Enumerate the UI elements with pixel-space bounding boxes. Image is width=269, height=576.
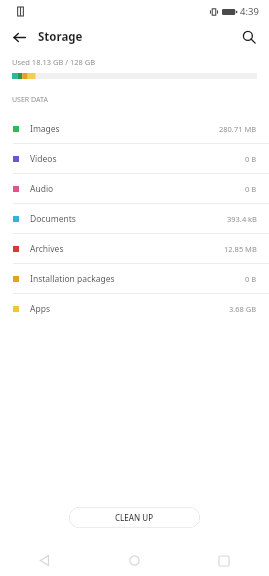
button[interactable]: Installation packages — [0, 264, 269, 294]
staticText: Documents — [30, 213, 76, 225]
button[interactable]: Images — [0, 114, 269, 144]
button[interactable]: Back — [0, 545, 89, 576]
staticText: CLEAN UP — [115, 512, 154, 523]
button[interactable]: Audio — [0, 174, 269, 204]
button[interactable]: Home — [89, 545, 179, 576]
staticText: Videos — [30, 153, 57, 165]
staticText: 0 B — [245, 184, 257, 194]
staticText: 0 B — [245, 274, 257, 284]
staticText: Storage — [38, 29, 83, 45]
button[interactable]: Back — [8, 26, 30, 48]
staticText: USER DATA — [12, 95, 48, 105]
button[interactable]: Apps — [0, 294, 269, 324]
staticText: Images — [30, 123, 60, 135]
button[interactable]: Archives — [0, 234, 269, 264]
staticText: 12.85 MB — [224, 244, 257, 254]
staticText: 393.4 kB — [227, 214, 257, 224]
staticText: 0 B — [245, 154, 257, 164]
staticText: 4:39 — [240, 5, 259, 18]
staticText: 280.71 MB — [219, 124, 257, 134]
button[interactable]: Search — [237, 25, 261, 49]
staticText: 3.68 GB — [229, 304, 257, 314]
button[interactable]: Recents — [179, 545, 269, 576]
button[interactable]: CLEAN UP — [69, 507, 200, 528]
staticText: Used 18.13 GB / 128 GB — [12, 57, 96, 67]
staticText: Installation packages — [30, 273, 115, 285]
button[interactable]: Videos — [0, 144, 269, 174]
staticText: Audio — [30, 183, 54, 195]
button[interactable]: Documents — [0, 204, 269, 234]
staticText: Apps — [30, 303, 50, 315]
staticText: Archives — [30, 243, 64, 255]
